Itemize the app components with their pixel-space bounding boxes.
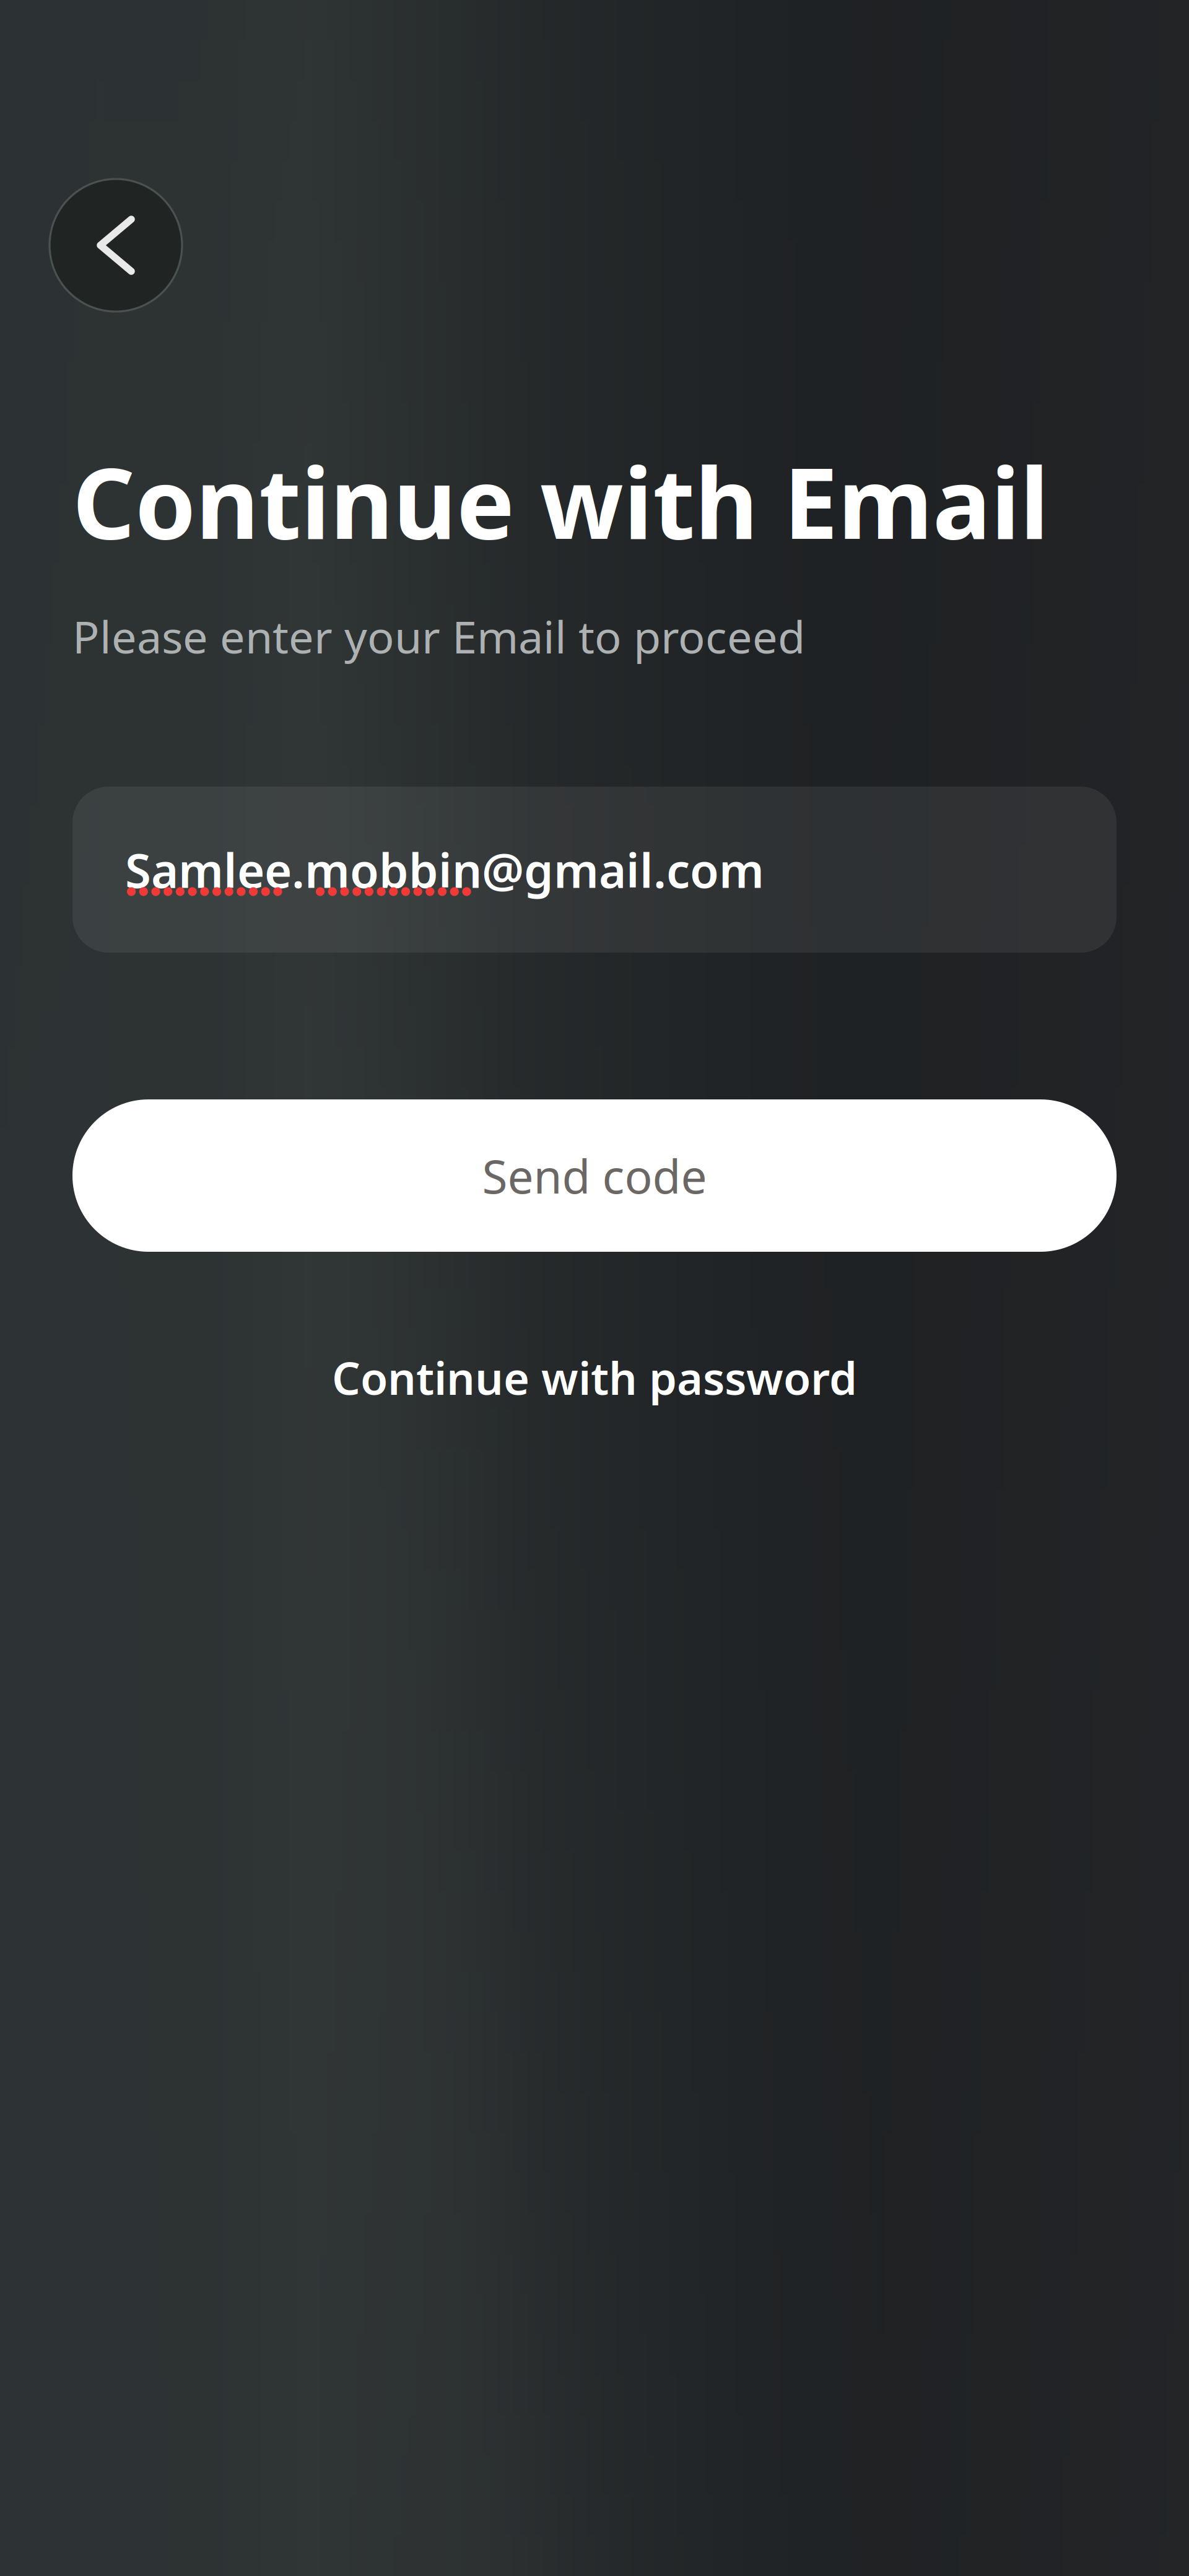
button[interactable]: Continue with password — [72, 1337, 1117, 1418]
staticText: Continue with password — [332, 1348, 857, 1407]
staticText: Send code — [482, 1145, 707, 1206]
staticText: Please enter your Email to proceed — [72, 606, 805, 666]
button[interactable]: Send code — [72, 1099, 1117, 1252]
staticText: Samlee.mobbin@gmail.com — [125, 838, 764, 901]
button[interactable]: Back — [50, 179, 182, 312]
button[interactable]: Samlee.mobbin@gmail.com — [72, 787, 1117, 953]
staticText: Continue with Email — [72, 436, 1049, 566]
